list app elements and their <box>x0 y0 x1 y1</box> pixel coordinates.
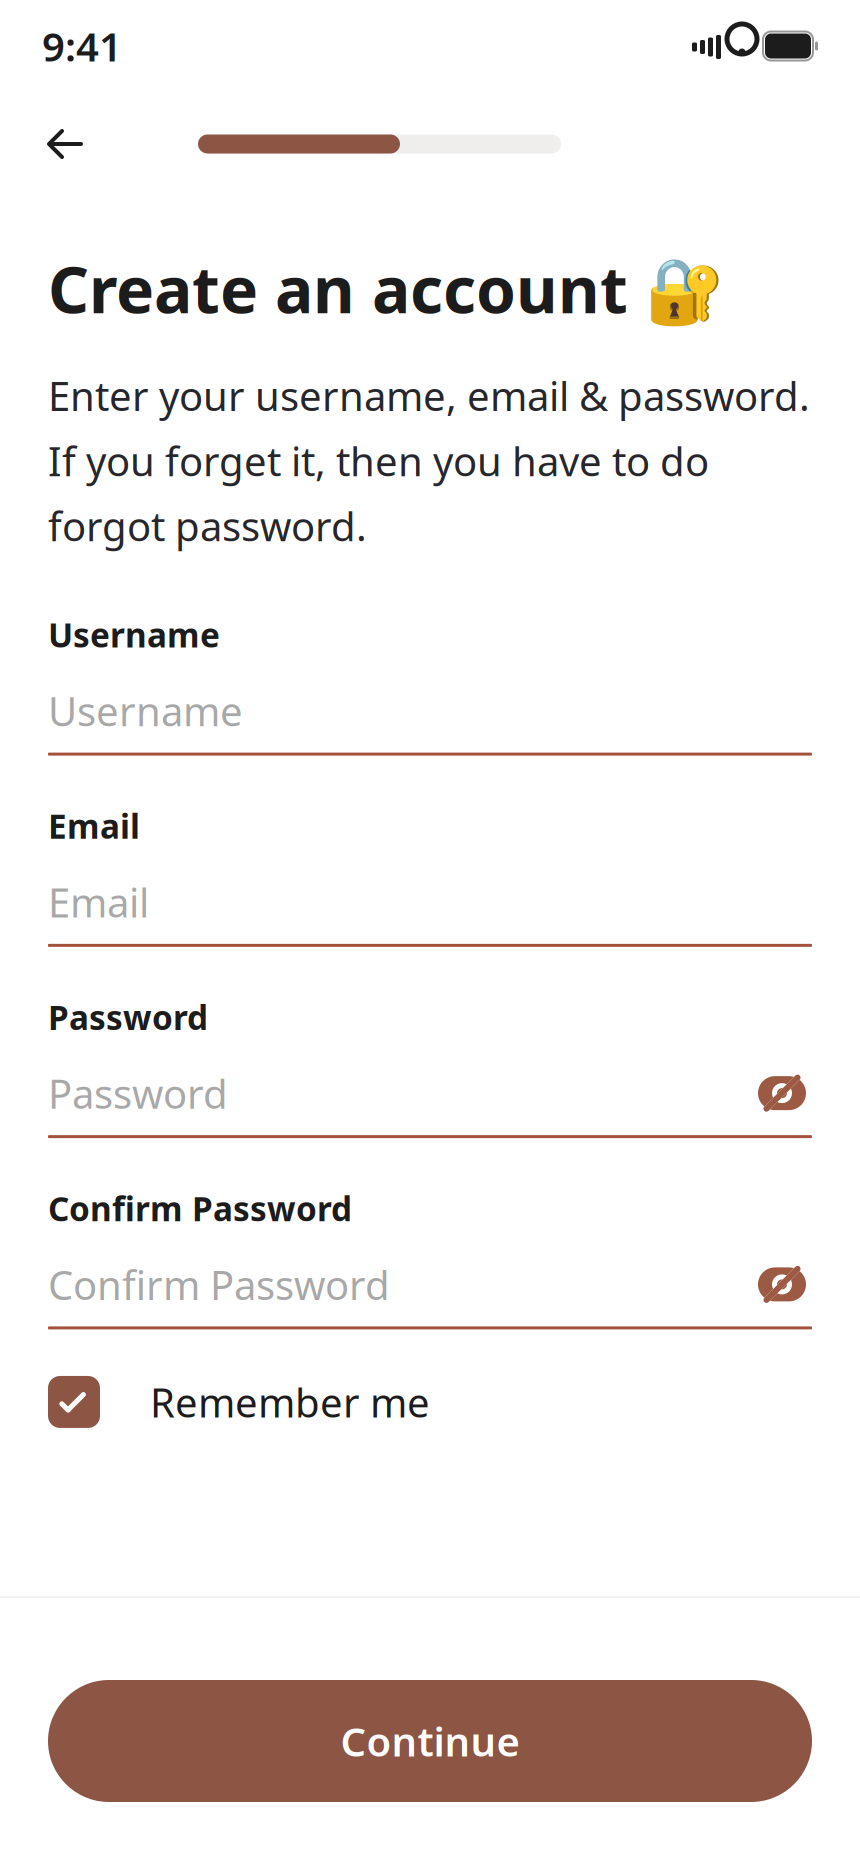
button[interactable]: Back <box>30 114 100 174</box>
staticText: Username <box>48 684 243 737</box>
staticText: Create an account 🔐 <box>48 246 725 331</box>
staticText: Remember me <box>150 1375 430 1428</box>
button[interactable]: Continue <box>48 1680 812 1802</box>
button[interactable]: Remember me <box>48 1375 812 1428</box>
staticText: Continue <box>340 1714 519 1767</box>
staticText: Username <box>48 612 220 657</box>
staticText: Email <box>48 875 149 928</box>
staticText: Confirm Password <box>48 1258 390 1311</box>
staticText: 9:41 <box>42 19 122 72</box>
staticText: Password <box>48 1067 228 1120</box>
staticText: Password <box>48 995 208 1039</box>
staticText: Confirm Password <box>48 1186 352 1230</box>
button[interactable]: Show Password <box>752 1067 812 1119</box>
button[interactable]: Show Confirm Password <box>752 1258 812 1310</box>
staticText: Enter your username, email & password. I… <box>48 369 810 552</box>
staticText: Email <box>48 804 140 848</box>
